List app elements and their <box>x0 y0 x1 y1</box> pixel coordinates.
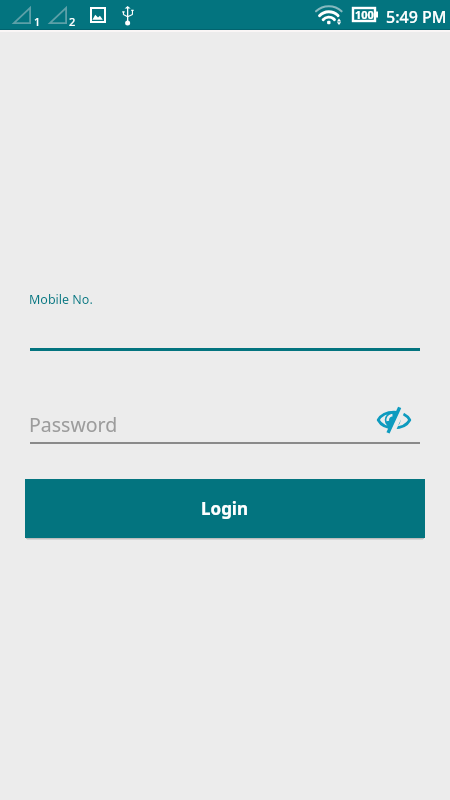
staticText: Password <box>29 411 118 438</box>
staticText: 100 <box>355 7 374 22</box>
staticText: Login <box>201 497 249 520</box>
button[interactable]: Password <box>18 400 432 444</box>
staticText: Mobile No. <box>29 291 93 308</box>
button[interactable]: Login <box>25 479 425 538</box>
button[interactable]: Show password <box>371 397 416 442</box>
button[interactable]: Mobile No. <box>18 282 432 352</box>
staticText: 1 <box>34 14 41 29</box>
staticText: 5:49 PM <box>386 6 447 28</box>
staticText: 2 <box>69 14 76 29</box>
